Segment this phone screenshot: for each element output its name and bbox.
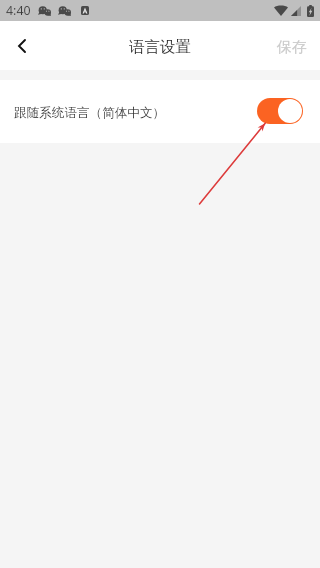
button[interactable]: Follow system language toggle — [257, 98, 303, 124]
staticText: 跟随系统语言（简体中文） — [14, 105, 166, 121]
button[interactable]: 跟随系统语言（简体中文） — [0, 80, 320, 143]
staticText: 语言设置 — [129, 37, 191, 57]
button[interactable]: Back — [0, 21, 44, 70]
staticText: 保存 — [277, 38, 307, 57]
button[interactable]: 保存 — [263, 21, 320, 70]
staticText: 4:40 — [6, 2, 31, 19]
